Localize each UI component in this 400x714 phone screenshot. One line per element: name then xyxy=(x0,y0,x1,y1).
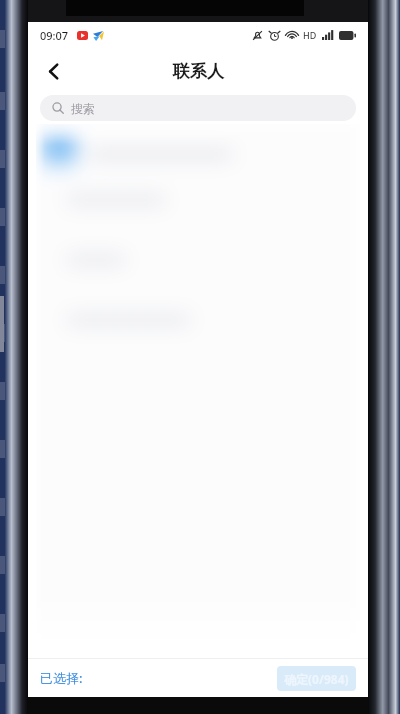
staticText: 09:07 xyxy=(40,28,69,43)
staticText: HD xyxy=(303,29,317,41)
staticText: 已选择: xyxy=(40,669,83,687)
button[interactable]: 已选择: xyxy=(40,669,83,687)
button[interactable]: 搜索 xyxy=(40,95,356,121)
staticText: 联系人 xyxy=(173,61,224,82)
staticText: 搜索 xyxy=(71,101,95,116)
button[interactable]: 确定(0/984) xyxy=(277,666,356,691)
button[interactable]: 返回 xyxy=(33,51,73,91)
staticText: 确定(0/984) xyxy=(284,671,349,687)
